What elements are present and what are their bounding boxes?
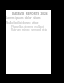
staticText: Rutrum minec semsed etia <box>11 28 47 32</box>
staticText: DATAVIS REPORTS 2024 <box>12 12 48 16</box>
staticText: Phasellus viverra nullaut <box>11 25 44 29</box>
staticText: Lorem ipsum dolor sitam <box>6 16 41 20</box>
button[interactable]: DATAVIS REPORTS 2024 <box>6 10 51 74</box>
staticText: Nulla facilisi donec vitae <box>6 21 39 25</box>
